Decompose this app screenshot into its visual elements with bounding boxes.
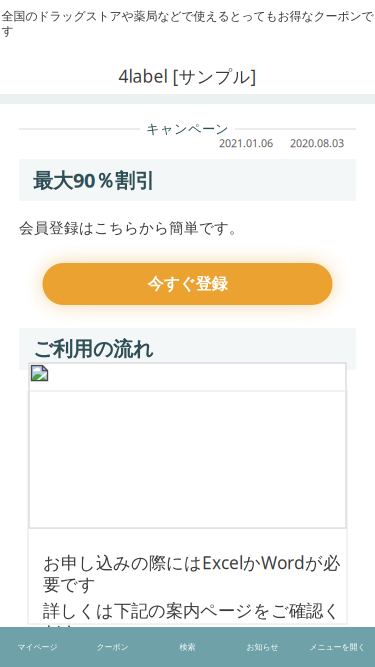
staticText: キャンペーン: [146, 121, 229, 137]
staticText: 全国のドラッグストアや薬局などで使えるとってもお得なクーポンです: [1, 9, 373, 38]
staticText: 4label [サンプル]: [118, 64, 256, 88]
button[interactable]: クーポン: [75, 627, 150, 667]
staticText: 会員登録はこちらから簡単です。: [19, 219, 244, 237]
staticText: 詳しくは下記の案内ページをご確認ください: [43, 600, 341, 643]
staticText: マイページ: [17, 642, 57, 652]
staticText: 2020.08.03: [290, 136, 344, 150]
staticText: 最大90％割引: [33, 167, 155, 193]
button[interactable]: メニューを開く: [300, 627, 375, 667]
button[interactable]: 今すぐ登録: [42, 263, 332, 305]
staticText: クーポン: [96, 642, 128, 652]
staticText: お知らせ: [246, 642, 278, 652]
staticText: 検索: [179, 642, 195, 652]
button[interactable]: お知らせ: [225, 627, 300, 667]
staticText: 今すぐ登録: [147, 274, 227, 294]
staticText: 2021.01.06: [219, 136, 273, 150]
staticText: ご利用の流れ: [33, 337, 153, 361]
staticText: お申し込みの際にはExcelかWordが必要です: [43, 551, 340, 595]
button[interactable]: 検索: [150, 627, 225, 667]
staticText: メニューを開く: [309, 642, 365, 652]
button[interactable]: マイページ: [0, 627, 75, 667]
